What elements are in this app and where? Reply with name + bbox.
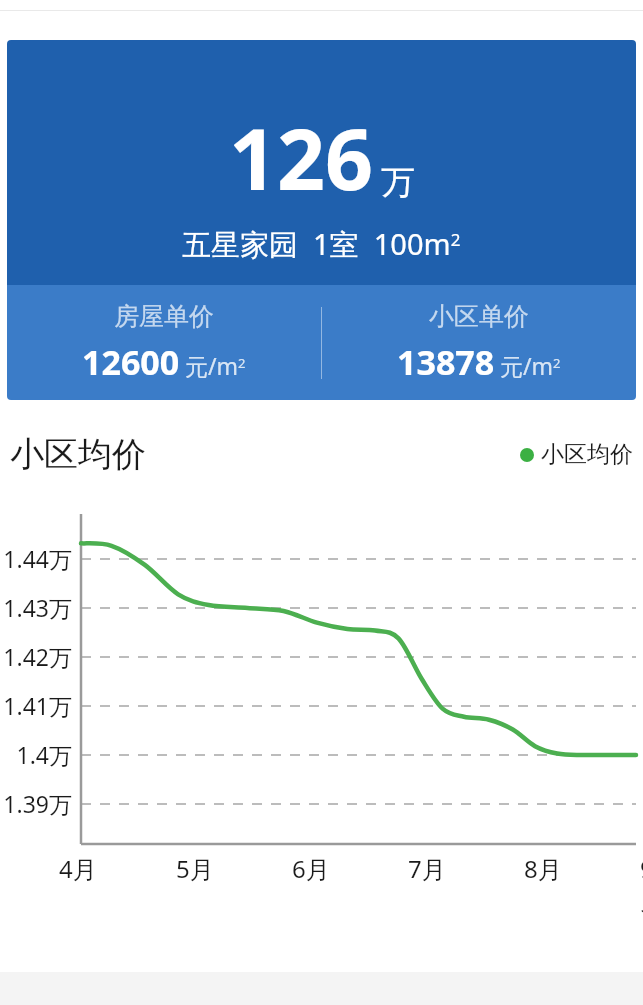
staticText: 小区均价 — [10, 433, 146, 476]
staticText: 1.41万 — [0, 690, 72, 721]
staticText: 6月 — [292, 852, 330, 885]
button[interactable]: Legend: community average price — [520, 440, 633, 469]
staticText: 13878 — [397, 339, 495, 385]
staticText: 五星家园 1室 100m2 — [182, 224, 461, 264]
staticText: 房屋单价 — [114, 301, 214, 332]
staticText: 1.43万 — [0, 592, 72, 623]
staticText: 5月 — [176, 852, 214, 885]
staticText: 万 — [381, 161, 415, 204]
staticText: 小区均价 — [541, 440, 633, 469]
staticText: 1.44万 — [0, 543, 72, 574]
button[interactable]: 126 — [7, 40, 636, 400]
staticText: 4月 — [59, 852, 97, 885]
button[interactable]: 小区单价 — [322, 301, 636, 385]
staticText: 8月 — [524, 852, 562, 885]
staticText: 1.4万 — [0, 739, 72, 770]
button[interactable]: 房屋单价 — [7, 301, 321, 385]
staticText: 小区单价 — [429, 301, 529, 332]
staticText: 元/m2 — [185, 350, 246, 381]
staticText: 126 — [229, 100, 374, 214]
staticText: 元/m2 — [500, 350, 561, 381]
staticText: 1.42万 — [0, 641, 72, 672]
staticText: 7月 — [408, 852, 446, 885]
staticText: 1.39万 — [0, 788, 72, 819]
staticText: 12600 — [82, 339, 180, 385]
